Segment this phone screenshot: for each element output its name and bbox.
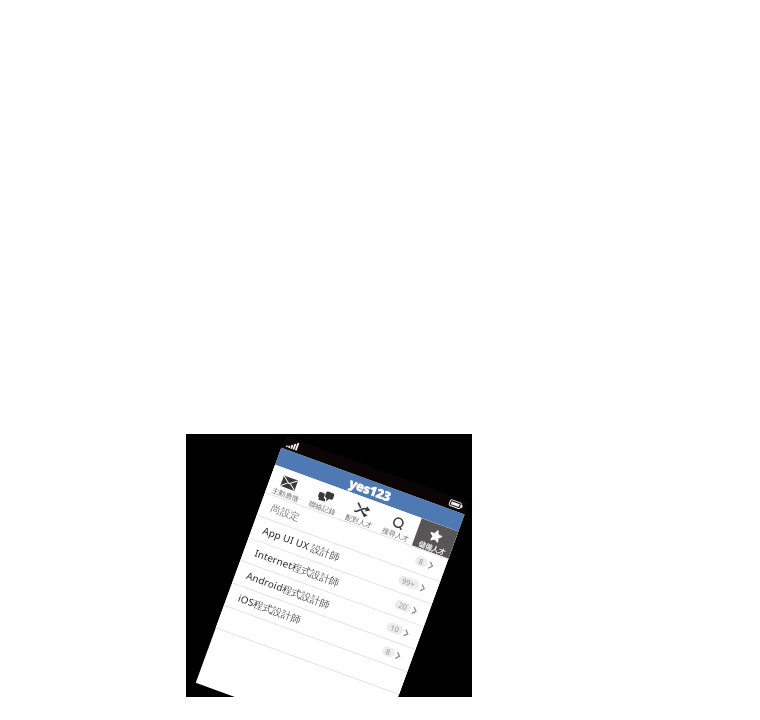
button[interactable]: 配對人才 — [338, 491, 385, 532]
staticText: 聯絡記錄 — [307, 499, 337, 517]
button[interactable]: 儲備人才 — [412, 518, 458, 559]
staticText: App UI UX 設計師 — [261, 523, 343, 564]
staticText: 8 — [417, 556, 425, 567]
staticText: yes123 — [347, 474, 394, 506]
staticText: 主動應徵 — [271, 486, 300, 504]
button[interactable] — [216, 605, 407, 694]
staticText: 8 — [384, 646, 392, 657]
other: 主動應徵 — [280, 475, 298, 491]
other: 配對人才 — [353, 502, 371, 518]
other: 儲備人才 — [427, 529, 445, 544]
button[interactable]: iOS程式設計師 — [224, 582, 416, 671]
button[interactable]: Internet程式設計師 — [241, 537, 432, 626]
button[interactable]: App UI UX 設計師 — [249, 515, 440, 604]
other: 聯絡記錄 — [317, 489, 335, 504]
staticText: 99+ — [401, 576, 417, 590]
button[interactable]: 尚設定 — [257, 492, 448, 581]
staticText: 10 — [389, 622, 401, 635]
button[interactable]: Android程式設計師 — [232, 560, 424, 649]
staticText: 尚設定 — [269, 501, 302, 524]
button[interactable]: 聯絡記錄 — [302, 478, 348, 519]
staticText: 儲備人才 — [417, 539, 447, 557]
staticText: Internet程式設計師 — [253, 546, 342, 589]
staticText: 配對人才 — [344, 512, 373, 530]
other: 搜尋人才 — [390, 515, 408, 531]
staticText: Android程式設計師 — [244, 568, 333, 612]
button[interactable]: 主動應徵 — [265, 465, 312, 505]
staticText: 20 — [397, 600, 409, 612]
staticText: 搜尋人才 — [381, 526, 410, 544]
button[interactable]: 搜尋人才 — [375, 505, 422, 545]
staticText: iOS程式設計師 — [236, 591, 304, 627]
